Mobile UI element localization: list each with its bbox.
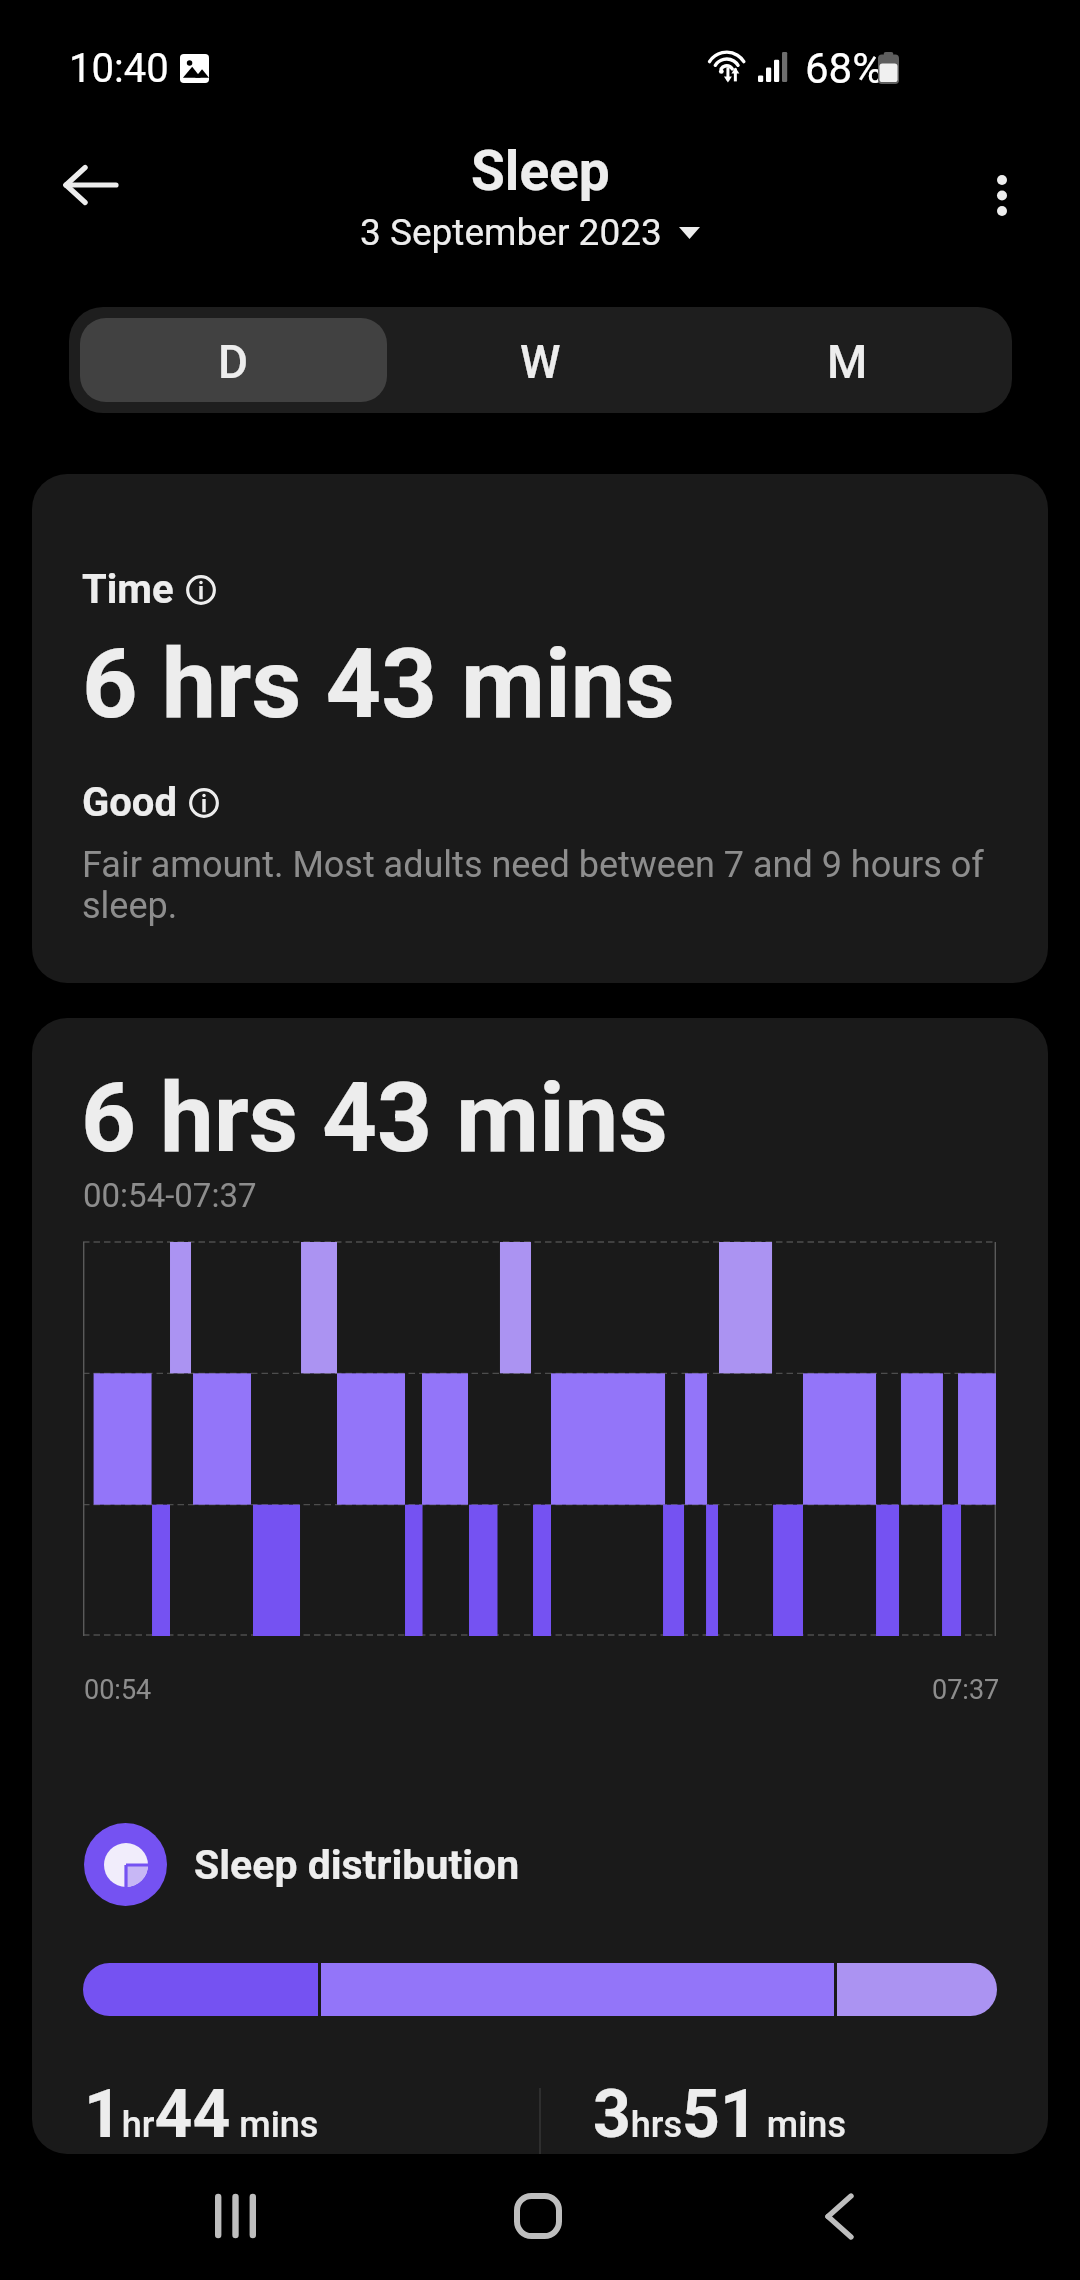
button[interactable]: Sleep score info [82, 779, 219, 826]
staticText: M [827, 335, 868, 389]
button[interactable]: M [694, 318, 1001, 402]
staticText: 6 hrs 43 mins [82, 627, 675, 741]
staticText: 3hrs51 mins [593, 2076, 846, 2153]
staticText: Good [82, 779, 177, 826]
staticText: Sleep distribution [194, 1841, 520, 1889]
button[interactable]: W [387, 318, 694, 402]
staticText: Sleep [471, 139, 610, 203]
staticText: D [218, 335, 249, 389]
button[interactable]: Back [720, 2170, 936, 2262]
staticText: Fair amount. Most adults need between 7 … [82, 844, 1008, 927]
button[interactable]: D [80, 318, 387, 402]
staticText: 00:54-07:37 [83, 1176, 257, 1215]
button[interactable]: More options [947, 140, 1057, 250]
staticText: 6 hrs 43 mins [81, 1062, 668, 1175]
button[interactable]: Back [35, 130, 145, 240]
button[interactable]: Recents [144, 2170, 360, 2262]
staticText: 07:37 [932, 1674, 1000, 1706]
button[interactable]: Home [432, 2170, 648, 2262]
staticText: Time [82, 566, 174, 613]
button[interactable]: 3 September 2023 [360, 211, 700, 254]
staticText: 10:40 [69, 45, 169, 92]
staticText: W [520, 335, 561, 389]
staticText: 68% [805, 44, 883, 93]
button[interactable]: Time info [82, 566, 216, 613]
button[interactable]: Sleep distribution [84, 1823, 520, 1906]
staticText: 3 September 2023 [360, 211, 662, 254]
staticText: 00:54 [84, 1674, 152, 1706]
staticText: 1hr44 mins [84, 2076, 319, 2153]
